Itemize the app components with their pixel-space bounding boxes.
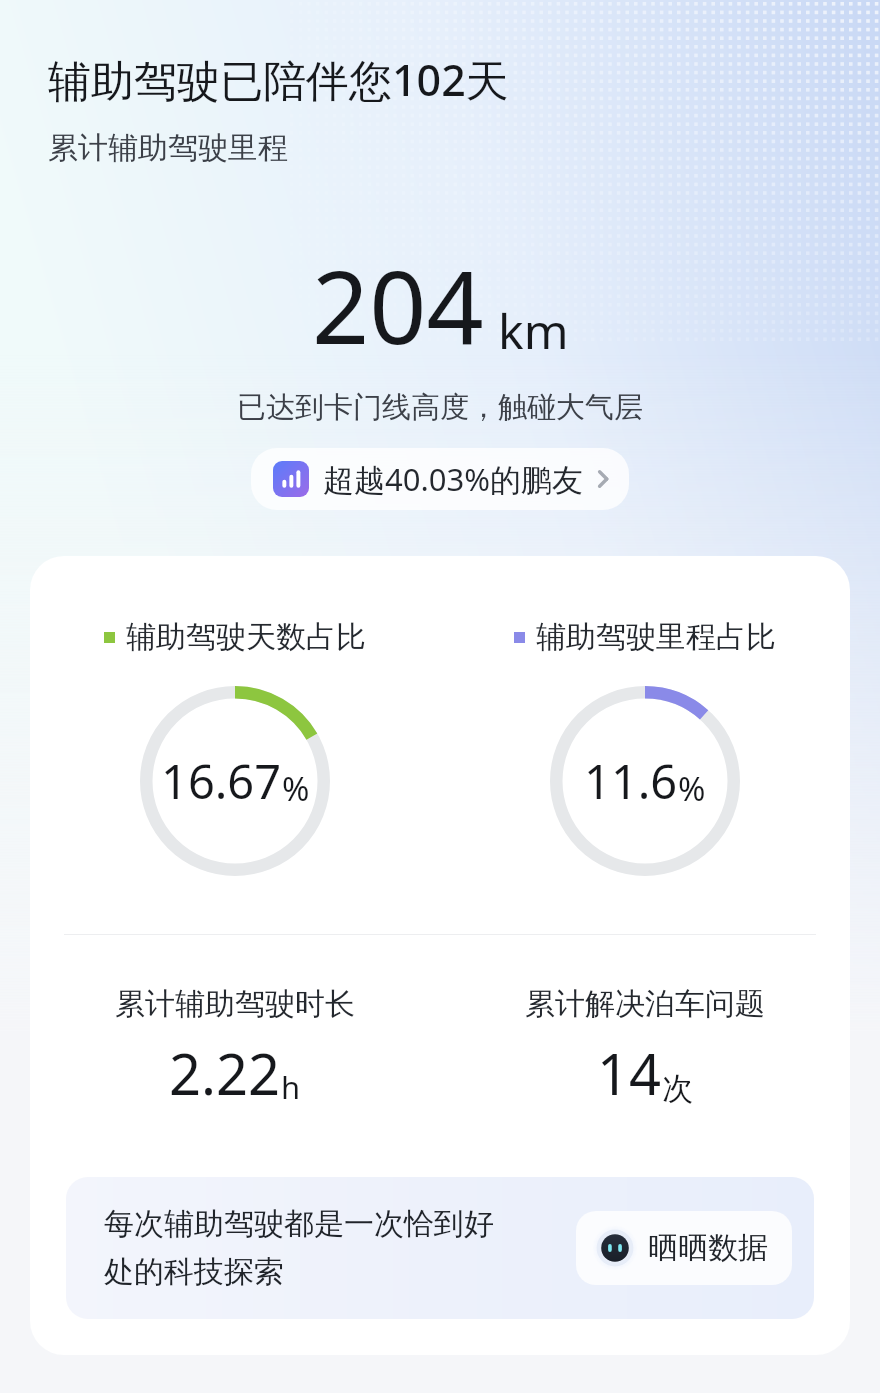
staticText: 辅助驾驶已陪伴您102天 bbox=[48, 50, 509, 109]
staticText: 累计辅助驾驶时长 bbox=[115, 985, 355, 1023]
button[interactable]: AI 助手 bbox=[576, 1211, 792, 1285]
button[interactable]: 超越40.03%的鹏友 bbox=[251, 448, 629, 510]
staticText: 已达到卡门线高度，触碰大气层 bbox=[0, 389, 880, 426]
staticText: % bbox=[282, 766, 310, 811]
staticText: 每次辅助驾驶都是一次恰到好 处的科技探索 bbox=[104, 1205, 568, 1291]
staticText: 2.22 bbox=[169, 1035, 281, 1111]
staticText: 累计辅助驾驶里程 bbox=[48, 129, 288, 167]
staticText: 累计解决泊车问题 bbox=[525, 985, 765, 1023]
staticText: km bbox=[498, 298, 569, 363]
staticText: h bbox=[281, 1066, 301, 1108]
other: AI 助手 bbox=[592, 1225, 638, 1271]
staticText: 11.6 bbox=[584, 749, 678, 813]
staticText: 辅助驾驶天数占比 bbox=[126, 618, 366, 656]
staticText: 14 bbox=[597, 1035, 662, 1111]
staticText: 204 bbox=[312, 237, 484, 373]
staticText: 16.67 bbox=[161, 749, 282, 813]
staticText: 次 bbox=[662, 1069, 693, 1108]
staticText: 超越40.03%的鹏友 bbox=[323, 458, 583, 500]
staticText: % bbox=[678, 766, 706, 811]
staticText: 辅助驾驶里程占比 bbox=[536, 618, 776, 656]
staticText: 晒晒数据 bbox=[648, 1229, 768, 1267]
